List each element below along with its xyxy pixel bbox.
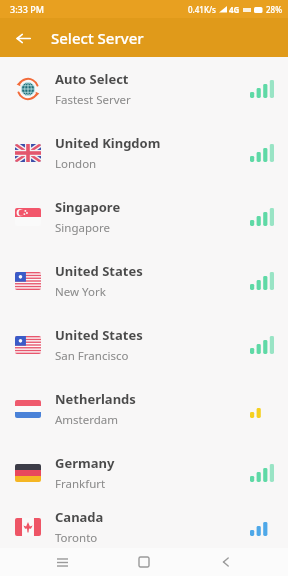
staticText: Singapore: [55, 198, 121, 216]
button[interactable]: Netherlands: [0, 377, 288, 441]
staticText: London: [55, 156, 97, 172]
button[interactable]: United States: [0, 313, 288, 377]
staticText: Select Server: [51, 28, 144, 48]
button[interactable]: Auto Select: [0, 57, 288, 121]
button[interactable]: Germany: [0, 441, 288, 505]
staticText: Germany: [55, 454, 115, 472]
button[interactable]: Back: [206, 548, 246, 576]
staticText: San Francisco: [55, 348, 129, 364]
staticText: Netherlands: [55, 390, 136, 408]
button[interactable]: Canada: [0, 505, 288, 548]
button[interactable]: Singapore: [0, 185, 288, 249]
button[interactable]: Back: [10, 25, 36, 51]
staticText: United States: [55, 326, 143, 344]
staticText: 4G: [229, 4, 240, 15]
staticText: 0.41K/s: [188, 4, 216, 15]
button[interactable]: United States: [0, 249, 288, 313]
staticText: Singapore: [55, 220, 110, 236]
staticText: Toronto: [55, 530, 98, 546]
staticText: Frankfurt: [55, 476, 106, 492]
staticText: Auto Select: [55, 70, 129, 88]
staticText: United Kingdom: [55, 134, 161, 152]
staticText: Fastest Server: [55, 92, 131, 108]
staticText: 3:33 PM: [10, 3, 44, 15]
staticText: United States: [55, 262, 143, 280]
staticText: Canada: [55, 508, 104, 526]
staticText: New York: [55, 284, 106, 300]
staticText: Amsterdam: [55, 412, 119, 428]
button[interactable]: Recents: [42, 548, 82, 576]
button[interactable]: United Kingdom: [0, 121, 288, 185]
staticText: 28%: [266, 4, 282, 15]
button[interactable]: Home: [124, 548, 164, 576]
